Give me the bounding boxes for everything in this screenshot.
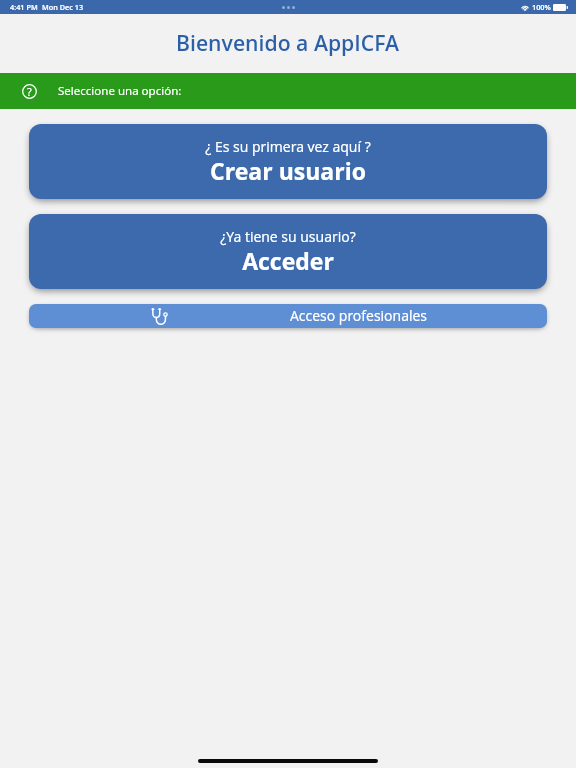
staticText: ¿ Es su primera vez aquí ? — [205, 137, 371, 156]
staticText: Mon Dec 13 — [42, 2, 84, 12]
staticText: ? — [27, 84, 32, 99]
staticText: Bienvenido a AppICFA — [176, 28, 400, 57]
staticText: Acceder — [242, 245, 334, 276]
staticText: Acceso profesionales — [290, 306, 428, 325]
staticText: ¿Ya tiene su usuario? — [220, 227, 356, 246]
staticText: Crear usuario — [210, 155, 366, 186]
staticText: 4:41 PM — [10, 2, 38, 12]
staticText: Seleccione una opción: — [58, 83, 182, 99]
staticText: 100% — [532, 2, 551, 12]
button[interactable]: ¿ Es su primera vez aquí ? — [29, 124, 547, 199]
button[interactable]: ¿Ya tiene su usuario? — [29, 214, 547, 289]
button[interactable]: Acceso profesionales — [29, 304, 547, 328]
